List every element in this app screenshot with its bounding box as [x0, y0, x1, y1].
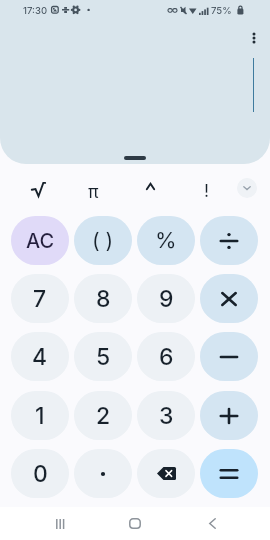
- button[interactable]: Multiply: [200, 274, 258, 323]
- staticText: 75%: [211, 5, 232, 16]
- staticText: 8: [96, 285, 111, 313]
- staticText: !: [204, 180, 210, 201]
- button[interactable]: 0: [11, 449, 69, 498]
- button[interactable]: Back: [194, 507, 230, 540]
- button[interactable]: Minus: [200, 332, 258, 381]
- button[interactable]: 6: [137, 332, 195, 381]
- staticText: %: [155, 227, 177, 254]
- staticText: 6: [159, 343, 174, 371]
- button[interactable]: More options: [244, 28, 264, 48]
- button[interactable]: π: [71, 174, 115, 208]
- staticText: 3: [159, 402, 174, 430]
- button[interactable]: ( ): [74, 216, 132, 265]
- button[interactable]: 7: [11, 274, 69, 323]
- button[interactable]: Square root: [16, 172, 60, 206]
- button[interactable]: Divide: [200, 216, 258, 265]
- button[interactable]: AC: [11, 216, 69, 265]
- staticText: 1: [35, 402, 45, 430]
- staticText: π: [88, 181, 99, 202]
- button[interactable]: Recent apps: [42, 507, 78, 540]
- staticText: 0: [33, 460, 48, 488]
- button[interactable]: Backspace: [137, 449, 195, 498]
- button[interactable]: 4: [11, 332, 69, 381]
- button[interactable]: Power: [128, 169, 172, 203]
- staticText: ( ): [92, 228, 114, 253]
- staticText: 9: [159, 285, 174, 313]
- button[interactable]: 5: [74, 332, 132, 381]
- button[interactable]: Show more functions: [237, 178, 257, 198]
- button[interactable]: Home: [117, 507, 153, 540]
- button[interactable]: Plus: [200, 391, 258, 440]
- button[interactable]: Decimal point: [74, 449, 132, 498]
- button[interactable]: 8: [74, 274, 132, 323]
- button[interactable]: Equals: [200, 449, 258, 498]
- button[interactable]: %: [137, 216, 195, 265]
- button[interactable]: 9: [137, 274, 195, 323]
- button[interactable]: 1: [11, 391, 69, 440]
- button[interactable]: !: [185, 173, 229, 207]
- staticText: 7: [33, 285, 47, 313]
- button[interactable]: 2: [74, 391, 132, 440]
- button[interactable]: 3: [137, 391, 195, 440]
- staticText: 2: [96, 402, 111, 430]
- staticText: 5: [96, 343, 111, 371]
- staticText: 4: [32, 343, 48, 371]
- staticText: 17:30: [23, 5, 48, 16]
- staticText: AC: [26, 229, 55, 253]
